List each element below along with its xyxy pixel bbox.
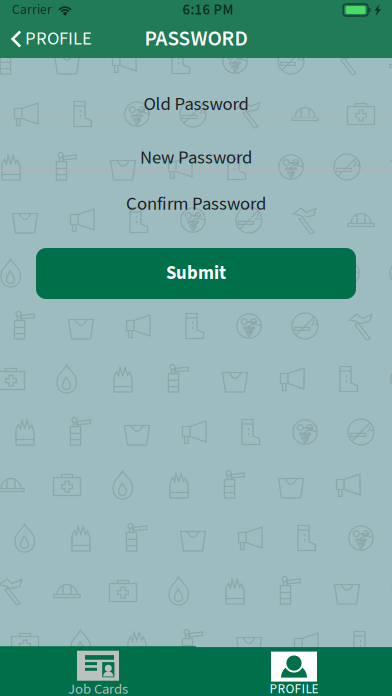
- button[interactable]: Old Password: [0, 58, 392, 117]
- staticText: Old Password: [143, 92, 248, 117]
- button[interactable]: New Password: [0, 117, 392, 170]
- staticText: Confirm Password: [126, 192, 266, 216]
- button[interactable]: Job Cards: [0, 649, 196, 696]
- button[interactable]: Submit: [36, 248, 356, 299]
- button[interactable]: Confirm Password: [0, 170, 392, 218]
- staticText: PASSWORD: [144, 25, 247, 53]
- staticText: Job Cards: [68, 680, 128, 696]
- staticText: Carrier: [12, 1, 52, 19]
- button[interactable]: PROFILE: [0, 22, 100, 56]
- staticText: New Password: [140, 146, 252, 170]
- staticText: PROFILE: [25, 27, 92, 51]
- button[interactable]: PROFILE: [196, 649, 392, 696]
- staticText: PROFILE: [269, 681, 318, 696]
- staticText: 6:16 PM: [183, 0, 234, 20]
- staticText: Submit: [166, 261, 226, 286]
